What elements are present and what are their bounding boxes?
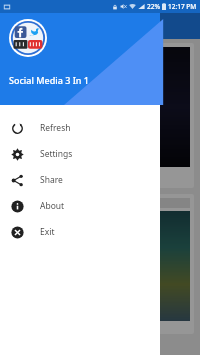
button[interactable]: Refresh bbox=[0, 115, 160, 141]
staticText: About bbox=[40, 200, 65, 212]
button[interactable]: About bbox=[0, 193, 160, 219]
button[interactable]: Exit bbox=[0, 219, 160, 245]
other: Share bbox=[11, 174, 24, 187]
button[interactable]: Settings bbox=[0, 141, 160, 167]
other: Exit bbox=[11, 226, 24, 239]
button[interactable]: Share bbox=[0, 167, 160, 193]
other: Settings bbox=[11, 148, 24, 161]
other: Refresh bbox=[11, 122, 24, 135]
other: About bbox=[11, 200, 24, 213]
staticText: Exit bbox=[40, 226, 55, 238]
staticText: Settings bbox=[40, 148, 73, 160]
staticText: Share bbox=[40, 174, 63, 186]
staticText: 22% bbox=[147, 2, 160, 11]
staticText: Refresh bbox=[40, 122, 71, 134]
staticText: 12:17 PM bbox=[168, 2, 197, 11]
staticText: Social Media 3 In 1 bbox=[9, 74, 89, 86]
